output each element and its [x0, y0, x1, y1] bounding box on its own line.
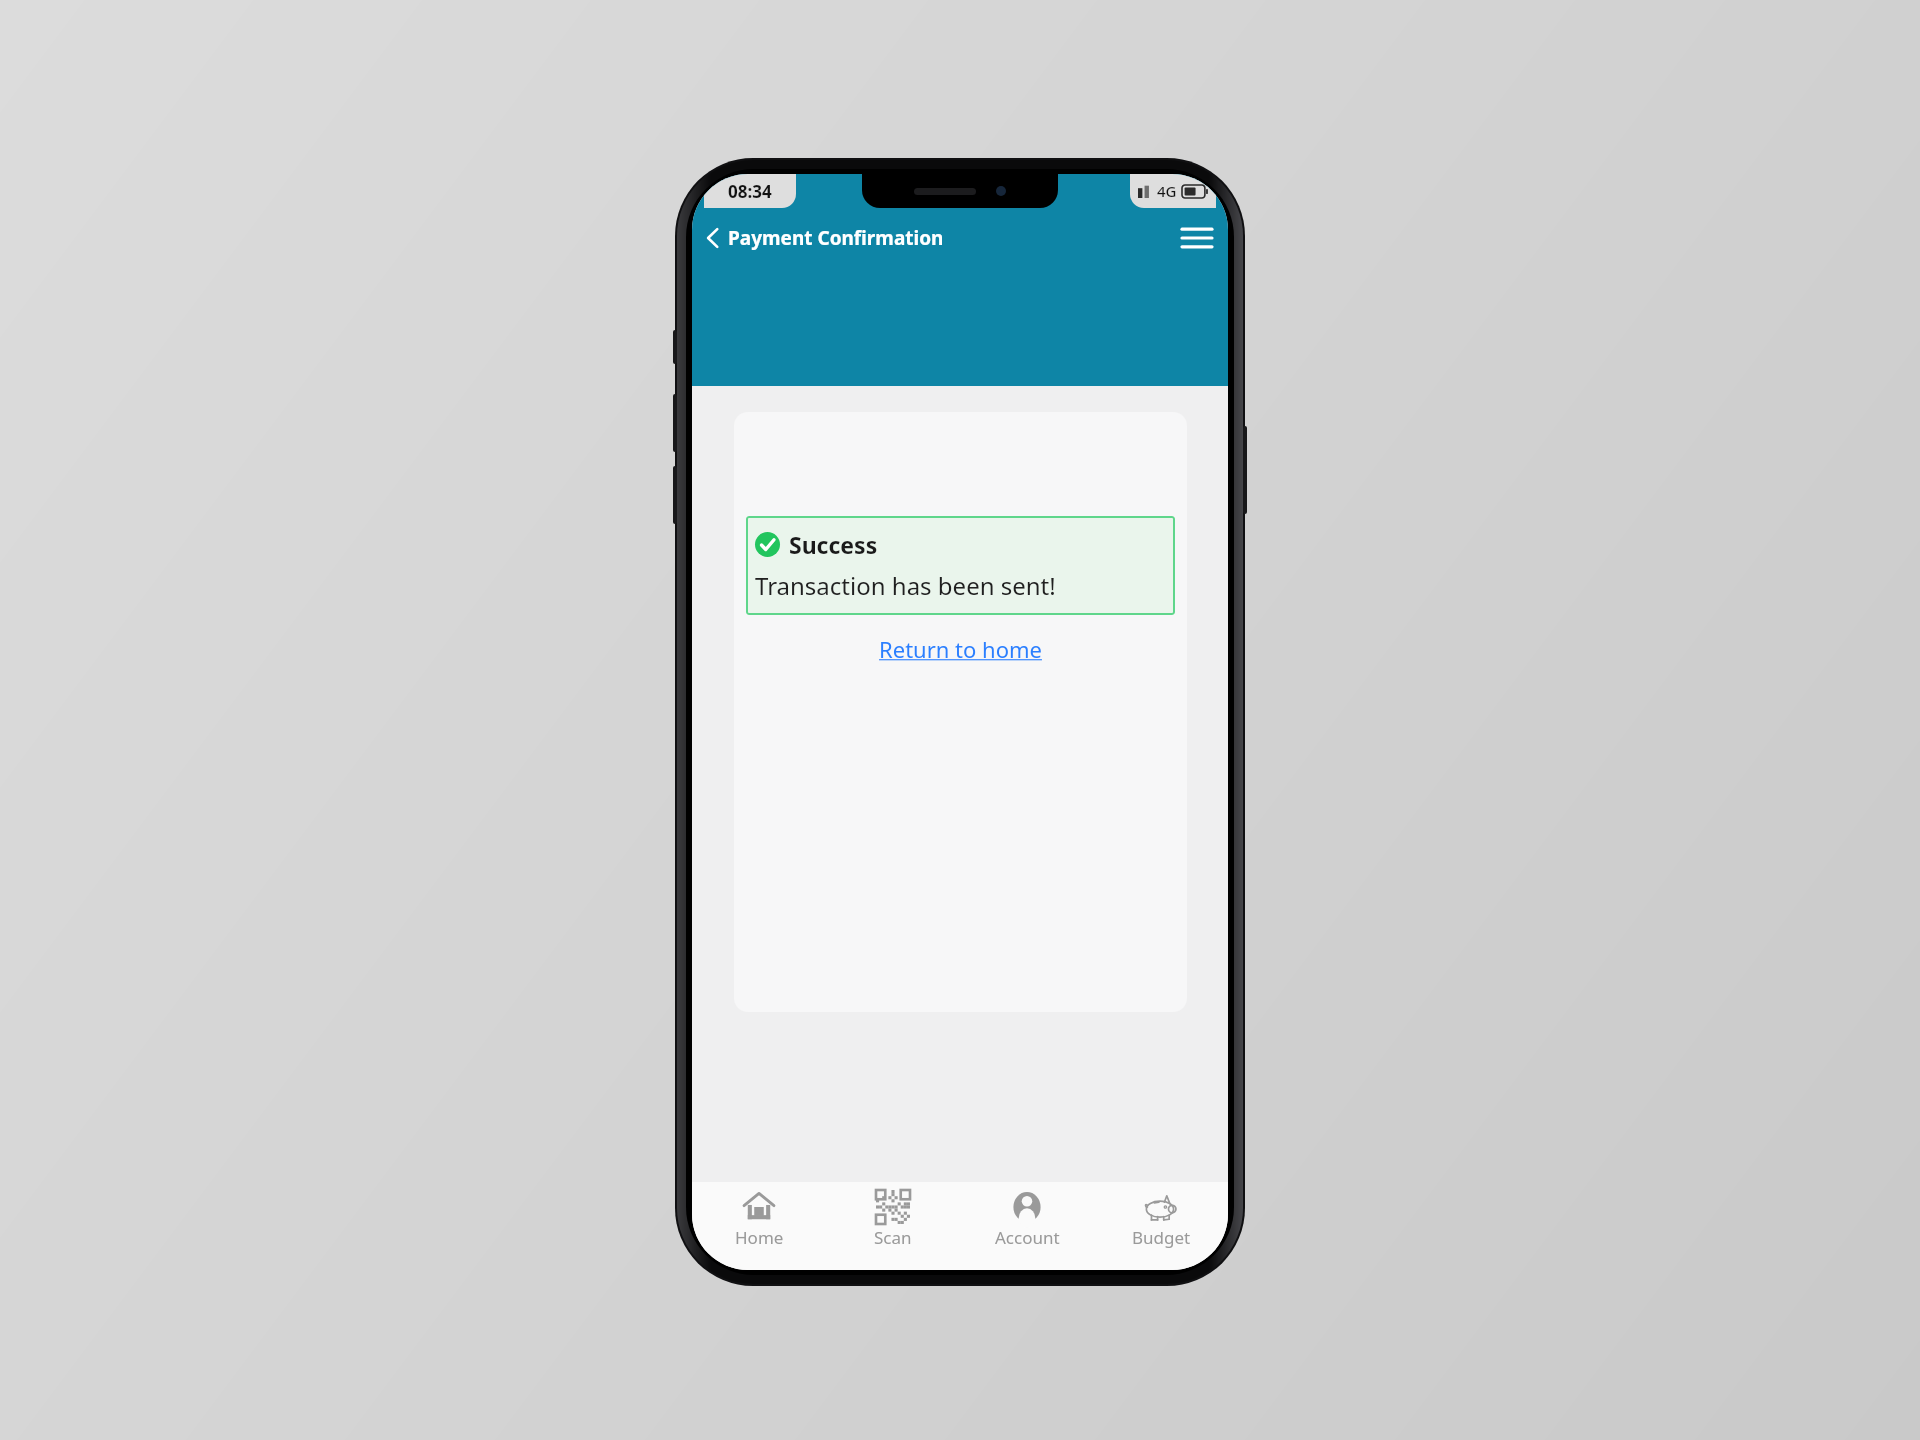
button[interactable]: Return to home [873, 631, 1048, 667]
staticText: Payment Confirmation [728, 225, 944, 251]
staticText: 08:34 [728, 180, 772, 203]
staticText: Scan [874, 1226, 912, 1249]
staticText: 4G [1157, 181, 1177, 201]
staticText: Return to home [879, 634, 1042, 664]
button[interactable]: Scan [826, 1182, 960, 1270]
button[interactable]: Account [960, 1182, 1094, 1270]
staticText: Success [789, 529, 878, 560]
staticText: Account [995, 1226, 1060, 1249]
staticText: Budget [1132, 1226, 1191, 1249]
staticText: Transaction has been sent! [755, 569, 1056, 602]
button[interactable]: Budget [1094, 1182, 1228, 1270]
button[interactable]: Menu [1172, 214, 1222, 262]
staticText: Home [735, 1226, 784, 1249]
button[interactable]: Payment Confirmation [698, 219, 950, 257]
button[interactable]: Home [692, 1182, 826, 1270]
